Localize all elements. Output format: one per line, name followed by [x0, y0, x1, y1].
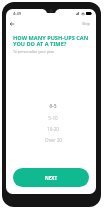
staticText: 10-20 [47, 126, 59, 132]
button[interactable]: NEXT [13, 168, 89, 187]
staticText: 5-10 [48, 115, 58, 121]
staticText: HOW MANY PUSH-UPS CAN YOU DO AT A TIME? [13, 34, 89, 48]
button[interactable]: 5-10 [10, 112, 96, 123]
staticText: To personalise your plan [13, 49, 55, 54]
staticText: Skip [82, 21, 91, 27]
button[interactable]: Back [7, 19, 17, 29]
button[interactable]: 10-20 [10, 123, 96, 134]
staticText: 4:49 [13, 11, 21, 16]
button[interactable]: Over 20 [10, 134, 96, 145]
staticText: NEXT [45, 175, 58, 181]
staticText: 0-5 [49, 103, 57, 110]
button[interactable]: Skip [78, 19, 96, 29]
staticText: Over 20 [45, 137, 62, 143]
button[interactable]: 0-5 [10, 101, 96, 112]
